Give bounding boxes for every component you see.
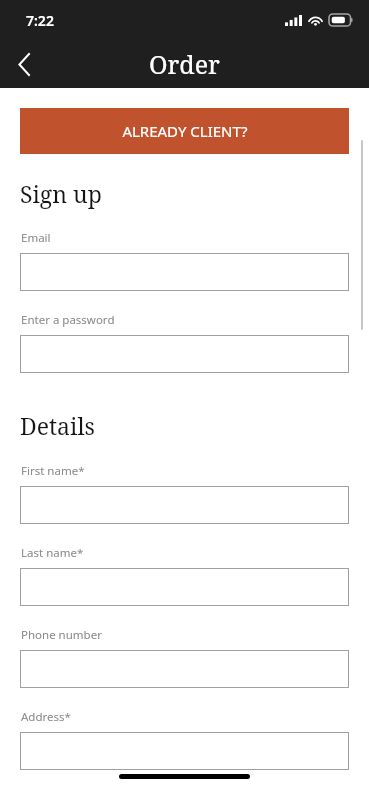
- staticText: Sign up: [20, 178, 102, 209]
- staticText: 7:22: [26, 11, 54, 30]
- button[interactable]: [20, 486, 349, 524]
- staticText: Address*: [21, 709, 71, 725]
- button[interactable]: [20, 253, 349, 291]
- button[interactable]: [20, 732, 349, 770]
- button[interactable]: [20, 650, 349, 688]
- staticText: Enter a password: [21, 312, 115, 328]
- staticText: ALREADY CLIENT?: [122, 121, 248, 141]
- staticText: Details: [20, 410, 95, 441]
- button[interactable]: Back: [0, 40, 48, 88]
- button[interactable]: [20, 568, 349, 606]
- staticText: Last name*: [21, 545, 84, 561]
- staticText: Order: [149, 47, 220, 81]
- button[interactable]: ALREADY CLIENT?: [20, 108, 349, 154]
- staticText: Email: [21, 230, 51, 246]
- staticText: First name*: [21, 463, 85, 479]
- button[interactable]: [20, 335, 349, 373]
- staticText: Phone number: [21, 627, 102, 643]
